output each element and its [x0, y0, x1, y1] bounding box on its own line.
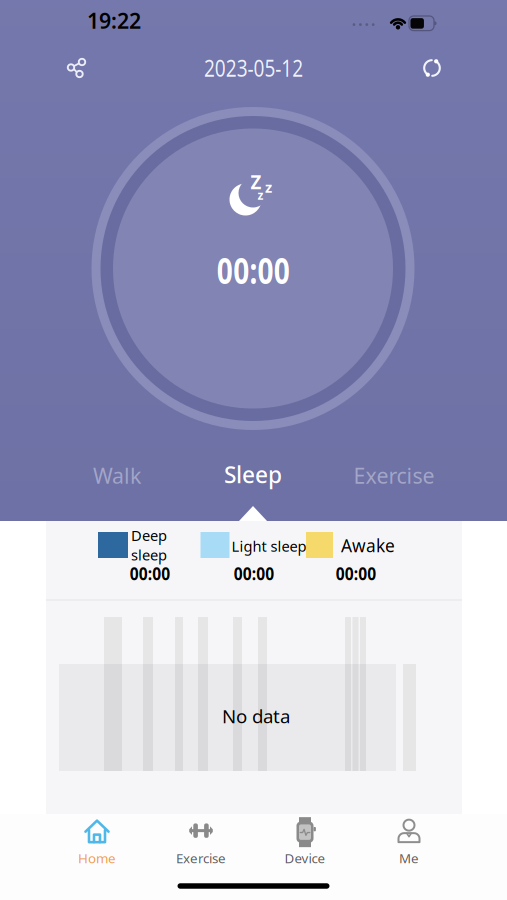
staticText: Walk	[93, 461, 141, 490]
staticText: Sleep	[224, 459, 282, 489]
button[interactable]: Me	[359, 815, 459, 869]
staticText: Light sleep	[231, 536, 306, 556]
staticText: No data	[222, 704, 290, 728]
staticText: z	[265, 177, 272, 197]
staticText: 00:00	[127, 562, 172, 585]
staticText: 00:00	[231, 562, 276, 585]
staticText: Exercise	[353, 461, 434, 490]
button[interactable]: Share	[56, 47, 96, 87]
staticText: Device	[284, 849, 325, 867]
staticText: Exercise	[176, 849, 226, 867]
button[interactable]: Device	[255, 815, 355, 869]
button[interactable]: Exercise	[151, 815, 251, 869]
button[interactable]: Sleep	[214, 453, 292, 495]
staticText: Z	[250, 170, 261, 194]
staticText: 00:00	[206, 246, 300, 294]
button[interactable]: Walk	[83, 455, 151, 496]
button[interactable]: Home	[47, 815, 147, 869]
staticText: Me	[399, 849, 419, 867]
button[interactable]: Exercise	[343, 455, 444, 496]
staticText: 19:22	[87, 6, 141, 35]
staticText: z	[257, 187, 263, 203]
staticText: 2023-05-12	[194, 53, 312, 83]
button[interactable]: Refresh	[412, 48, 452, 88]
staticText: Awake	[341, 534, 395, 557]
staticText: Home	[78, 849, 116, 867]
staticText: Deep sleep	[131, 525, 167, 564]
staticText: 00:00	[333, 562, 378, 585]
